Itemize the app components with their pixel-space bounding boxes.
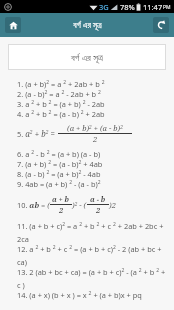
staticText: 2. (a - b)2 = a 2 - 2ab + b 2 <box>17 89 170 99</box>
staticText: বর্গ এর সূত্র <box>71 51 103 64</box>
staticText: 13. 2 (ab + bc + ca) = (a + b + c)2 - (a… <box>17 267 170 290</box>
staticText: 5. a2 + b2 = <box>17 128 58 139</box>
staticText: 4. a 2 + b 2 = (a - b) 2 + 2ab <box>17 109 170 119</box>
staticText: 3G <box>99 2 109 12</box>
staticText: PM <box>163 4 171 11</box>
staticText: 2 <box>93 134 98 144</box>
staticText: 8. (a - b) 2 = (a + b)2 - 4ab <box>17 169 170 179</box>
staticText: 1. (a + b)2 = a 2 + 2ab + b 2 <box>17 79 170 89</box>
button[interactable]: Home <box>5 17 21 33</box>
staticText: 9. 4ab = (a + b) 2 - (a - b)2 <box>17 179 170 189</box>
staticText: )2 <box>109 200 116 210</box>
staticText: (a + b)2 + (a − b)2 <box>67 123 123 133</box>
staticText: a − b <box>90 194 106 204</box>
staticText: 2 <box>59 205 64 215</box>
staticText: 14. (a + x) (b + x ) = x 2 + (a + b)x + … <box>17 290 170 300</box>
staticText: 11:47 <box>143 2 163 12</box>
button[interactable]: বর্গ এর সূত্র <box>8 44 166 70</box>
staticText: a + b <box>52 194 70 204</box>
staticText: 3. a 2 + b 2 = (a + b) 2 - 2ab <box>17 99 170 109</box>
staticText: 10. ab = ( <box>17 200 50 210</box>
staticText: 12. a 2 + b 2 + c 2 = (a + b + c)2 - 2 (… <box>17 244 170 267</box>
button[interactable]: Back <box>153 17 169 33</box>
staticText: 78% <box>120 2 135 12</box>
staticText: 2 <box>96 205 101 215</box>
staticText: 6. a 2 - b 2 = (a + b) (a - b) <box>17 149 170 159</box>
staticText: )2 − ( <box>72 200 87 210</box>
staticText: বর্গ এর সূত্র <box>73 19 102 31</box>
staticText: 11. (a + b + c)2 = a 2 + b 2 + c 2 + 2ab… <box>17 221 170 244</box>
staticText: 7. (a + b) 2 = (a - b)2 + 4ab <box>17 159 170 169</box>
